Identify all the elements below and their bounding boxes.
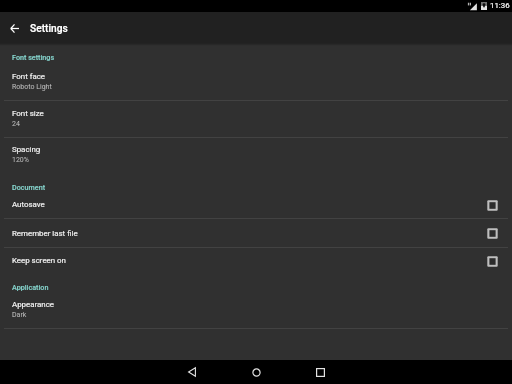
staticText: Font settings	[12, 53, 55, 61]
button[interactable]: Back	[3, 16, 26, 39]
staticText: 11:36	[490, 1, 510, 10]
button[interactable]: Font size	[0, 101, 512, 137]
staticText: Settings	[30, 23, 68, 35]
staticText: Remember last file	[12, 229, 78, 238]
button[interactable]: Font face	[0, 64, 512, 100]
button[interactable]: Appearance	[0, 297, 512, 328]
staticText: Font size	[12, 109, 44, 118]
button[interactable]: Keep screen on checkbox	[483, 252, 501, 270]
button[interactable]: Spacing	[0, 138, 512, 172]
button[interactable]: Autosave	[0, 191, 512, 218]
button[interactable]: Autosave checkbox	[483, 196, 501, 214]
button[interactable]: Recent apps	[308, 360, 332, 384]
staticText: 120%	[12, 156, 29, 164]
staticText: Spacing	[12, 145, 41, 154]
button[interactable]: Back	[180, 360, 204, 384]
button[interactable]: Keep screen on	[0, 248, 512, 273]
staticText: Autosave	[12, 200, 45, 209]
button[interactable]: Remember last file	[0, 219, 512, 247]
button[interactable]: Remember last file checkbox	[483, 224, 501, 242]
staticText: Roboto Light	[12, 83, 52, 91]
staticText: 24	[12, 120, 20, 128]
staticText: Keep screen on	[12, 256, 66, 265]
staticText: Dark	[12, 311, 27, 319]
staticText: Application	[12, 283, 49, 291]
staticText: Document	[12, 183, 46, 191]
staticText: Font face	[12, 72, 46, 81]
button[interactable]: Home	[244, 360, 268, 384]
staticText: Appearance	[12, 300, 54, 309]
